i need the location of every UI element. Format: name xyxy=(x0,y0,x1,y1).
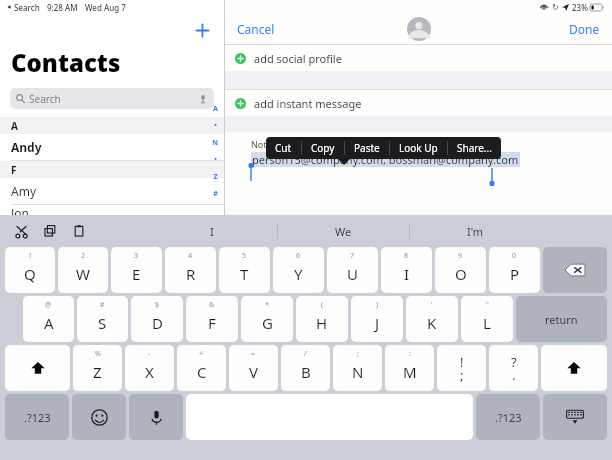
button[interactable]: 9 xyxy=(435,247,486,293)
staticText: ? xyxy=(511,353,517,371)
button[interactable]: ( xyxy=(296,296,348,342)
button[interactable]: Jon xyxy=(0,205,224,215)
staticText: Paste xyxy=(354,141,380,155)
staticText: Notes xyxy=(251,138,276,150)
button[interactable]: Cut xyxy=(10,220,32,242)
staticText: 0 xyxy=(512,251,517,261)
button[interactable]: Share... xyxy=(448,137,501,159)
staticText: .?123 xyxy=(495,410,522,425)
button[interactable]: .?123 xyxy=(5,394,69,440)
button[interactable]: 7 xyxy=(327,247,378,293)
staticText: Copy xyxy=(311,141,335,155)
button[interactable]: + xyxy=(177,345,226,391)
button[interactable]: Look Up xyxy=(390,137,447,159)
button[interactable]: return xyxy=(516,296,607,342)
button[interactable]: add instant message xyxy=(225,90,612,116)
button[interactable]: ) xyxy=(351,296,403,342)
button[interactable]: - xyxy=(125,345,174,391)
button[interactable]: Andy xyxy=(0,134,224,161)
button[interactable]: 0 xyxy=(489,247,540,293)
button[interactable]: ; xyxy=(333,345,382,391)
staticText: $ xyxy=(155,300,160,310)
staticText: O xyxy=(455,264,467,284)
staticText: & xyxy=(209,300,215,310)
staticText: " xyxy=(486,300,489,310)
button[interactable]: Done xyxy=(565,18,604,40)
button[interactable]: $ xyxy=(131,296,183,342)
button[interactable]: We xyxy=(278,215,409,247)
button[interactable]: Cut xyxy=(266,137,301,159)
staticText: C xyxy=(197,362,207,382)
button[interactable]: add social profile xyxy=(225,45,612,71)
button[interactable]: I xyxy=(146,215,277,247)
staticText: # xyxy=(213,189,218,206)
staticText: A xyxy=(44,313,54,333)
staticText: A xyxy=(213,104,218,121)
button[interactable]: = xyxy=(229,345,278,391)
button[interactable]: Copy xyxy=(39,220,61,242)
staticText: We xyxy=(335,224,352,239)
button[interactable]: 4 xyxy=(165,247,216,293)
button[interactable]: Copy xyxy=(302,137,344,159)
staticText: ↻ xyxy=(552,3,559,12)
button[interactable]: 1 xyxy=(5,247,55,293)
staticText: add instant message xyxy=(254,96,362,111)
staticText: @ xyxy=(45,300,52,310)
button[interactable]: Hide keyboard xyxy=(543,394,607,440)
button[interactable]: ! xyxy=(437,345,486,391)
staticText: W xyxy=(76,264,90,284)
staticText: add social profile xyxy=(254,51,342,66)
button[interactable]: # xyxy=(77,296,128,342)
staticText: ( xyxy=(321,300,324,310)
button[interactable]: 6 xyxy=(273,247,324,293)
button[interactable]: I'm xyxy=(410,215,541,247)
button[interactable]: F xyxy=(0,161,224,178)
staticText: E xyxy=(132,264,141,284)
button[interactable]: Shift xyxy=(541,345,607,391)
button[interactable]: / xyxy=(281,345,330,391)
button[interactable]: : xyxy=(385,345,434,391)
button[interactable]: ? xyxy=(489,345,538,391)
staticText: Amy xyxy=(11,183,37,199)
button[interactable]: .?123 xyxy=(476,394,540,440)
staticText: 7 xyxy=(350,251,355,261)
staticText: J xyxy=(375,313,380,333)
button[interactable]: Contact photo xyxy=(407,17,431,41)
staticText: Wed Aug 7 xyxy=(85,2,126,13)
staticText: B xyxy=(301,362,311,382)
button[interactable]: ' xyxy=(406,296,458,342)
staticText: N xyxy=(352,362,364,382)
button[interactable]: % xyxy=(73,345,122,391)
button[interactable]: Shift xyxy=(5,345,70,391)
button[interactable]: & xyxy=(186,296,238,342)
staticText: person15@company.com, bossman@company.co… xyxy=(252,152,519,167)
button[interactable]: A xyxy=(0,117,224,134)
staticText: F xyxy=(11,163,17,177)
button[interactable]: Paste xyxy=(68,220,90,242)
staticText: N xyxy=(212,138,218,155)
staticText: • xyxy=(214,121,217,138)
button[interactable]: Paste xyxy=(345,137,389,159)
staticText: % xyxy=(95,349,101,359)
staticText: - xyxy=(148,349,151,359)
staticText: 9:28 AM xyxy=(47,2,78,13)
button[interactable]: 5 xyxy=(219,247,270,293)
button[interactable]: Search xyxy=(10,88,214,109)
staticText: X xyxy=(145,362,154,382)
button[interactable]: 2 xyxy=(58,247,108,293)
button[interactable]: 3 xyxy=(111,247,162,293)
button[interactable]: Emoji xyxy=(72,394,126,440)
button[interactable]: 8 xyxy=(381,247,432,293)
button[interactable]: Add contact xyxy=(190,18,214,42)
staticText: G xyxy=(262,313,273,333)
button[interactable]: @ xyxy=(23,296,74,342)
staticText: ; xyxy=(460,366,464,384)
button[interactable]: " xyxy=(461,296,513,342)
button[interactable]: Backspace xyxy=(543,247,607,293)
button[interactable]: * xyxy=(241,296,293,342)
button[interactable]: Dictate xyxy=(129,394,183,440)
button[interactable]: Cancel xyxy=(233,18,279,40)
button[interactable]: Amy xyxy=(0,178,224,205)
staticText: L xyxy=(483,313,491,333)
